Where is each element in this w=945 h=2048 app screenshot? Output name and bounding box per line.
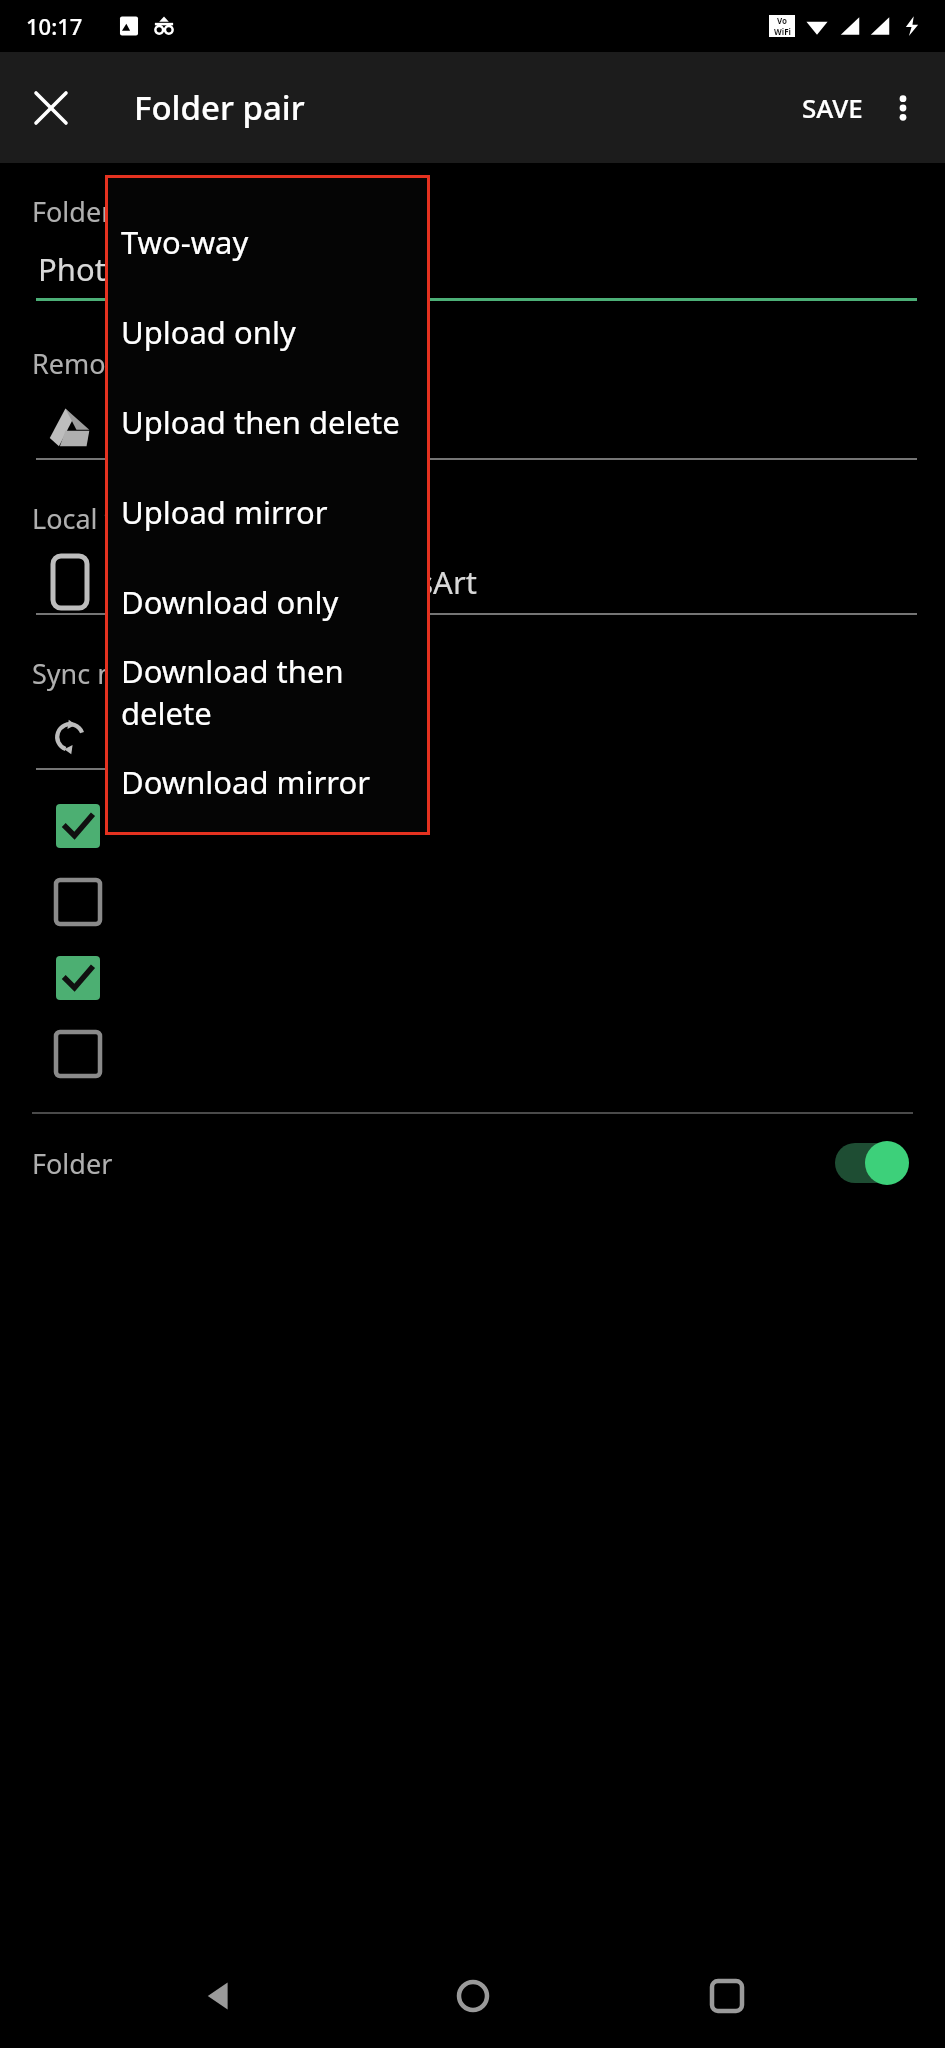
button[interactable]: [Internal storage]/PicsArt xyxy=(36,551,917,613)
button[interactable]: Upload mirror xyxy=(105,467,430,557)
button[interactable]: More options xyxy=(875,80,931,136)
staticText: 10:17 xyxy=(26,11,83,41)
button[interactable]: Home xyxy=(436,1959,510,2033)
button[interactable]: Download only xyxy=(105,557,430,647)
staticText: Upload mirror xyxy=(121,491,328,533)
staticText: Folder xyxy=(32,1145,113,1182)
button[interactable]: Unchecked option xyxy=(56,1032,100,1076)
staticText: Download then delete xyxy=(121,650,430,734)
staticText: Folder pair name xyxy=(32,193,249,230)
button[interactable]: Download mirror xyxy=(105,737,430,827)
button[interactable]: /Betadown xyxy=(36,396,917,458)
button[interactable]: Upload only xyxy=(105,287,430,377)
button[interactable]: Checked option xyxy=(56,804,100,848)
button[interactable]: Back xyxy=(181,1959,255,2033)
staticText: WiFi xyxy=(774,26,791,37)
staticText: Download mirror xyxy=(121,761,371,803)
button[interactable]: Close xyxy=(22,79,80,137)
staticText: Two-way xyxy=(121,221,249,263)
button[interactable]: Photos Upload to Drive xyxy=(38,248,915,290)
button[interactable]: Unchecked option xyxy=(56,880,100,924)
staticText: Local folder in device xyxy=(32,500,299,537)
staticText: Folder pair xyxy=(134,85,305,130)
button[interactable]: Checked option xyxy=(56,956,100,1000)
button[interactable]: SAVE xyxy=(790,76,875,139)
staticText: Vo xyxy=(777,15,788,26)
button[interactable]: Two-way xyxy=(105,197,430,287)
button[interactable]: Recent apps xyxy=(690,1959,764,2033)
staticText: Upload then delete xyxy=(121,401,400,443)
staticText: SAVE xyxy=(802,90,863,125)
staticText: Download only xyxy=(121,581,339,623)
button[interactable]: Download then delete xyxy=(105,647,430,737)
staticText: [Internal storage]/PicsArt xyxy=(110,561,477,603)
staticText: Photos Upload to Drive xyxy=(38,248,376,290)
button[interactable]: Toggle folder option xyxy=(835,1140,913,1186)
button[interactable]: Folder xyxy=(32,1140,913,1186)
staticText: Sync method xyxy=(32,655,198,692)
button[interactable] xyxy=(36,706,144,768)
staticText: /Betadown xyxy=(110,406,269,448)
button[interactable]: Upload then delete xyxy=(105,377,430,467)
staticText: Remote folder in Google Drive xyxy=(32,345,416,382)
staticText: Upload only xyxy=(121,311,296,353)
